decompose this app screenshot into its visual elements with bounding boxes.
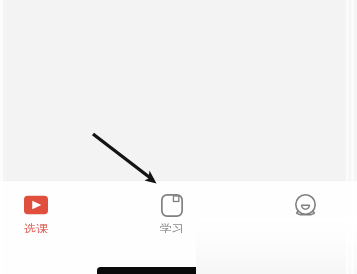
button[interactable]: 我的 [238, 181, 357, 233]
button[interactable]: 选课 [0, 181, 103, 233]
staticText: 学习 [160, 221, 184, 233]
staticText: 选课 [24, 221, 48, 233]
button[interactable]: 学习 [105, 181, 239, 233]
